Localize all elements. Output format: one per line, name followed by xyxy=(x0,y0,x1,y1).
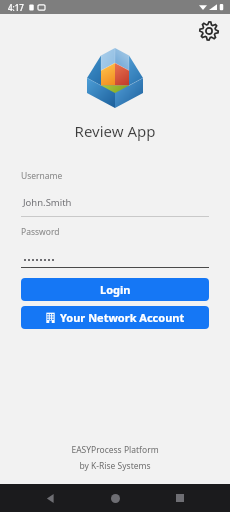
button[interactable]: Recent apps xyxy=(165,484,195,512)
button[interactable]: Login xyxy=(21,278,209,301)
staticText: Review App xyxy=(0,121,230,141)
button[interactable]: Home xyxy=(100,484,130,512)
staticText: John.Smith xyxy=(23,196,72,209)
staticText: 4:17 xyxy=(8,2,24,13)
button[interactable]: Settings xyxy=(196,18,222,44)
staticText: by K-Rise Systems xyxy=(0,460,230,472)
button[interactable]: Your Network Account xyxy=(21,306,209,329)
staticText: EASYProcess Platform xyxy=(0,444,230,456)
staticText: Login xyxy=(100,282,131,297)
button[interactable]: Back xyxy=(35,484,65,512)
staticText: Your Network Account xyxy=(60,310,185,325)
staticText: Password xyxy=(21,226,60,238)
staticText: Username xyxy=(21,170,63,182)
